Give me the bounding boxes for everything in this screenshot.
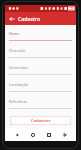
button[interactable]: Localização	[9, 80, 72, 97]
button[interactable]: Keyboard	[60, 130, 69, 139]
button[interactable]: Cadastrar	[10, 116, 71, 125]
button[interactable]: Referência	[9, 97, 72, 114]
button[interactable]: Recents	[44, 130, 53, 139]
staticText: Descrição	[9, 48, 26, 53]
button[interactable]: Nome	[9, 29, 72, 46]
staticText: Localização	[9, 82, 29, 87]
staticText: Cadastro	[18, 15, 41, 22]
button[interactable]: Dimensões	[9, 63, 72, 80]
staticText: Nome	[9, 31, 20, 36]
button[interactable]: Home	[28, 130, 37, 139]
button[interactable]: Descrição	[9, 46, 72, 63]
staticText: Referência	[9, 99, 27, 104]
button[interactable]: Back	[7, 14, 17, 24]
staticText: Cadastrar	[31, 118, 51, 124]
button[interactable]: Back	[12, 130, 21, 139]
staticText: Dimensões	[9, 65, 28, 70]
